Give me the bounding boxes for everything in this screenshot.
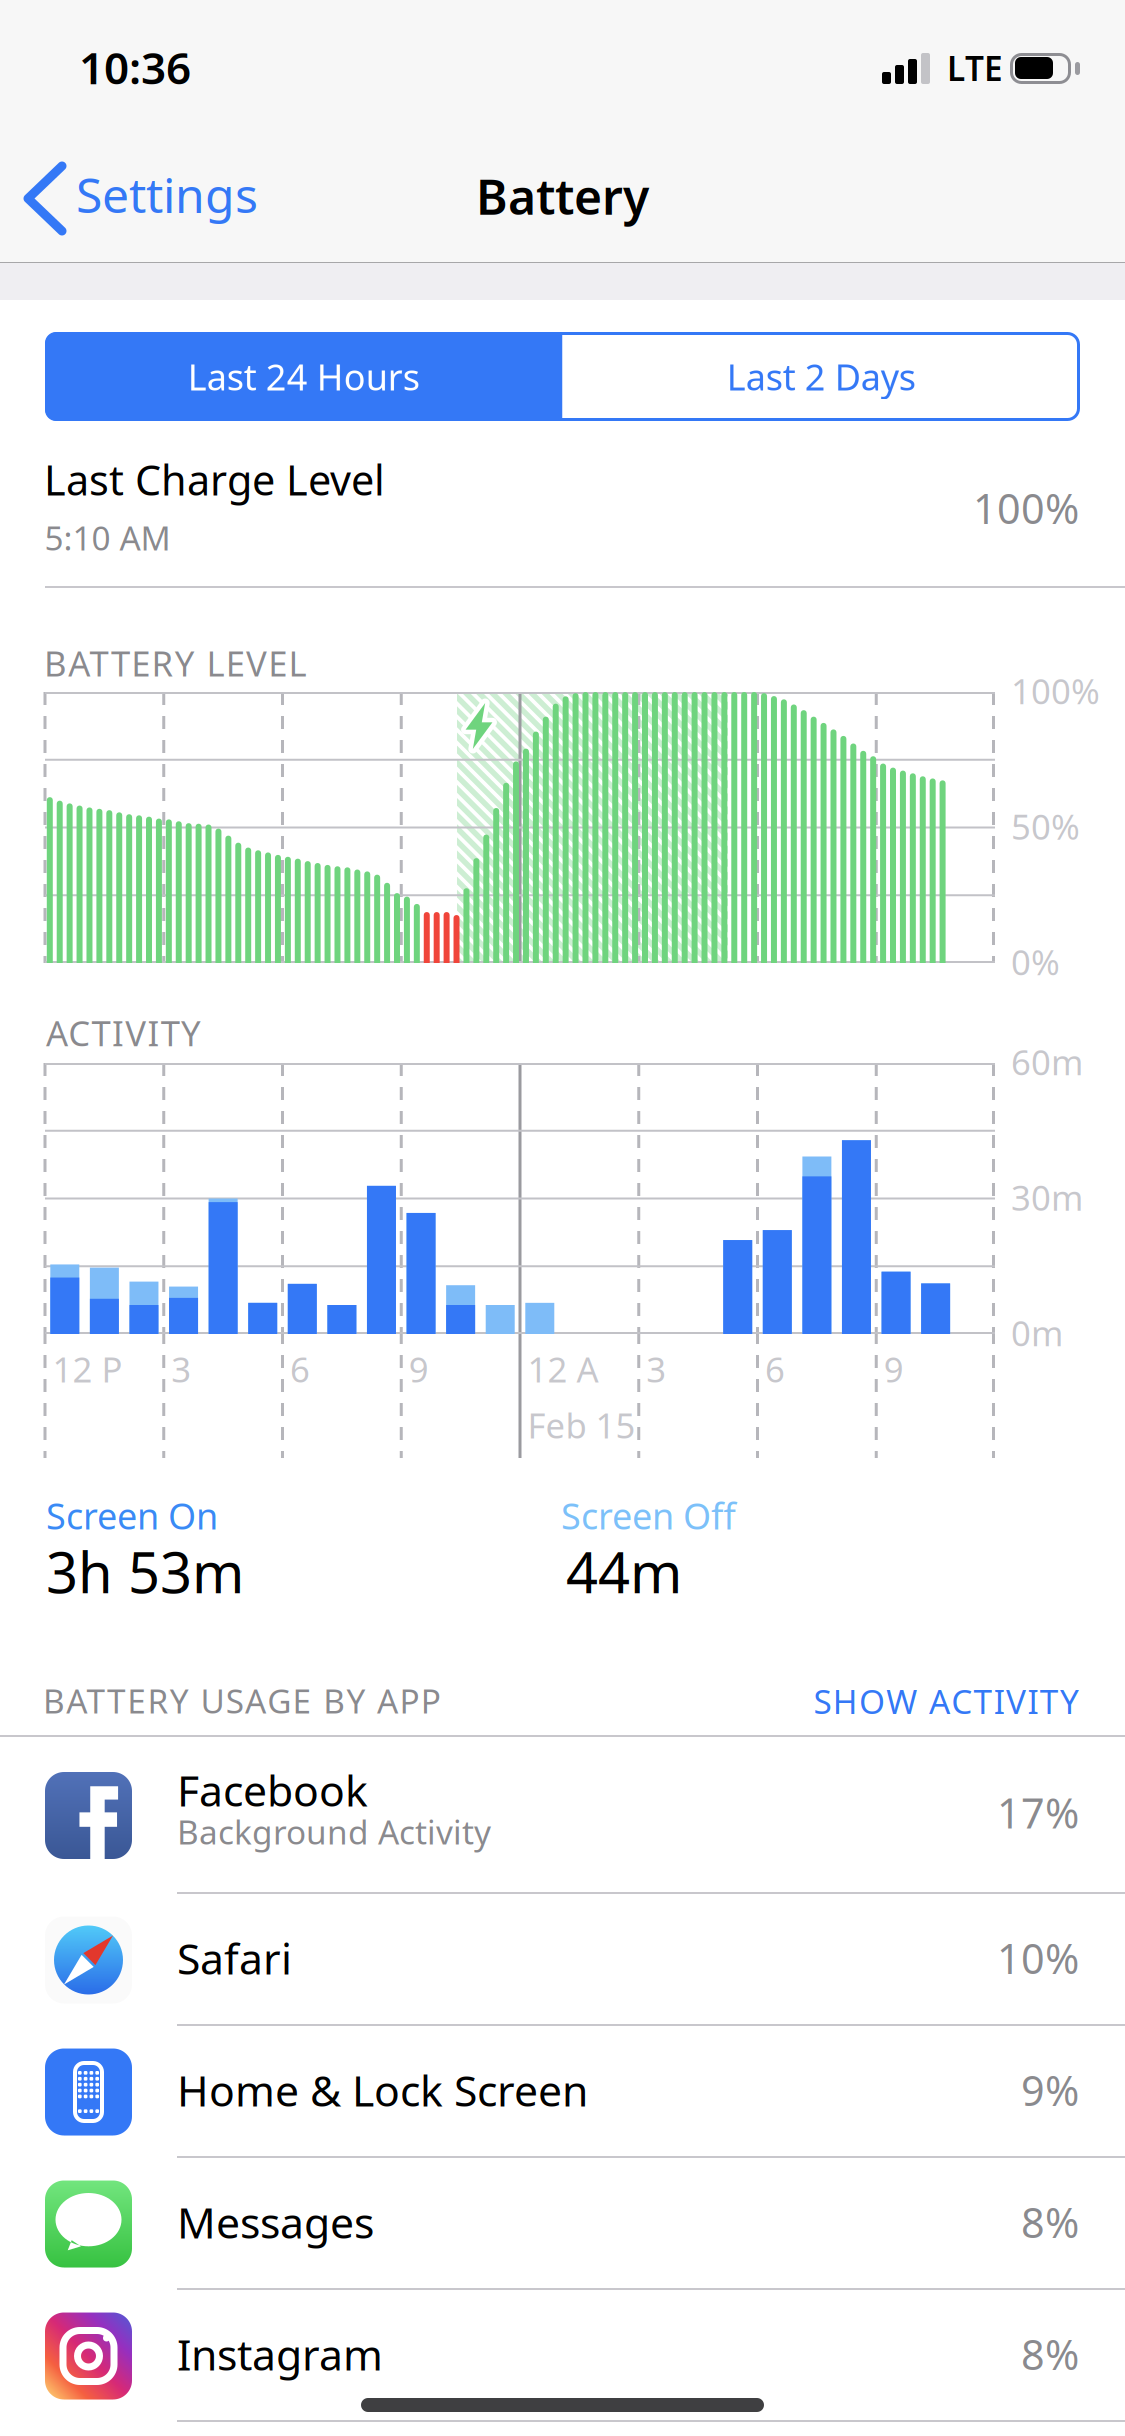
button[interactable]: SHOW ACTIVITY [679,1678,1079,1723]
staticText: 60m [1011,1039,1083,1085]
staticText: 17% [997,1785,1079,1840]
staticText: 9% [1021,2063,1079,2117]
button[interactable]: Home & Lock Screen [0,2026,1125,2158]
staticText: Last Charge Level [44,452,385,507]
staticText: BATTERY USAGE BY APP [43,1678,441,1723]
staticText: Screen Off [561,1492,736,1539]
staticText: LTE [947,46,1003,90]
button[interactable]: Facebook [0,1737,1125,1894]
staticText: Messages [177,2194,374,2250]
staticText: Background Activity [177,1809,491,1854]
staticText: 10% [997,1930,1079,1985]
staticText: 12 P [52,1346,122,1392]
staticText: 50% [1011,803,1080,849]
staticText: Home & Lock Screen [177,2062,588,2118]
button[interactable]: Messages [0,2158,1125,2290]
button[interactable]: Instagram [0,2290,1125,2422]
staticText: 6 [290,1346,310,1392]
staticText: Instagram [177,2326,383,2382]
staticText: Last 2 Days [727,353,916,400]
staticText: BATTERY LEVEL [44,640,307,686]
staticText: 9 [409,1346,429,1392]
staticText: 8% [1021,2327,1079,2381]
staticText: 100% [973,481,1079,535]
staticText: Last 24 Hours [188,353,420,400]
staticText: 8% [1021,2195,1079,2249]
staticText: Screen On [46,1492,218,1539]
staticText: 3h 53m [46,1534,244,1609]
button[interactable]: Safari [0,1894,1125,2026]
staticText: Settings [76,162,258,226]
staticText: 5:10 AM [44,515,170,560]
staticText: ACTIVITY [46,1010,201,1056]
staticText: 30m [1011,1174,1083,1220]
staticText: 0% [1011,939,1060,985]
staticText: Facebook [177,1762,368,1818]
staticText: Feb 15 [527,1402,635,1448]
button[interactable]: Last 2 Days [562,332,1080,421]
staticText: SHOW ACTIVITY [813,1679,1079,1723]
staticText: 3 [646,1346,666,1392]
staticText: 10:36 [79,38,191,96]
staticText: 44m [566,1534,682,1609]
button[interactable]: Last 24 Hours [45,332,562,421]
staticText: Safari [177,1930,292,1986]
button[interactable]: Settings [0,132,290,262]
staticText: 100% [1011,668,1100,714]
staticText: 12 A [527,1346,598,1392]
staticText: Battery [476,164,649,228]
staticText: 6 [765,1346,785,1392]
staticText: 9 [884,1346,904,1392]
staticText: 0m [1011,1310,1063,1356]
staticText: 3 [171,1346,191,1392]
